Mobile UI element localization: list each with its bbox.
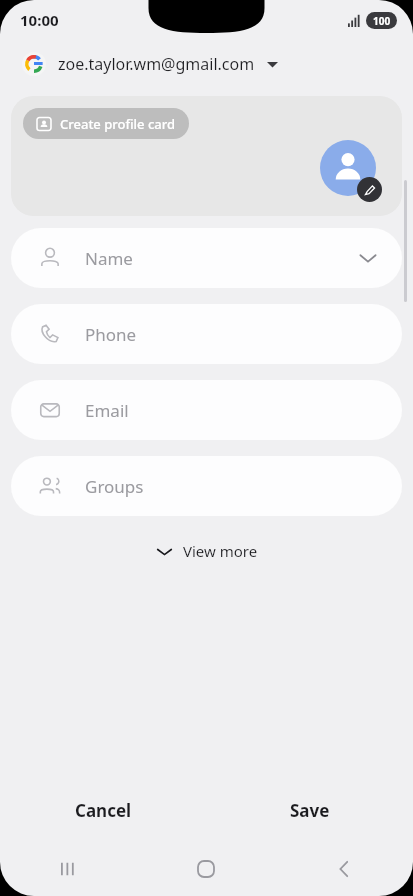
- button[interactable]: Home: [137, 850, 275, 888]
- button[interactable]: Save: [206, 788, 413, 832]
- button[interactable]: Email: [11, 380, 402, 440]
- staticText: Email: [85, 399, 378, 422]
- button[interactable]: Groups: [11, 456, 402, 516]
- button[interactable]: Edit profile photo: [320, 140, 382, 202]
- button[interactable]: Recent apps: [0, 850, 137, 888]
- staticText: Groups: [85, 475, 378, 498]
- staticText: Save: [290, 799, 330, 822]
- button[interactable]: Name: [11, 228, 402, 288]
- button[interactable]: Back: [275, 850, 413, 888]
- staticText: View more: [183, 541, 258, 561]
- button[interactable]: Phone: [11, 304, 402, 364]
- staticText: Create profile card: [60, 115, 176, 133]
- button[interactable]: zoe.taylor.wm@gmail.com: [0, 40, 413, 88]
- staticText: 10:00: [20, 10, 59, 30]
- staticText: zoe.taylor.wm@gmail.com: [58, 53, 255, 75]
- button[interactable]: View more: [0, 534, 413, 568]
- staticText: Name: [85, 247, 358, 270]
- staticText: Phone: [85, 323, 378, 346]
- staticText: 100: [373, 14, 391, 28]
- button[interactable]: Create profile card: [23, 108, 189, 139]
- button[interactable]: Cancel: [0, 788, 206, 832]
- staticText: Cancel: [75, 799, 132, 822]
